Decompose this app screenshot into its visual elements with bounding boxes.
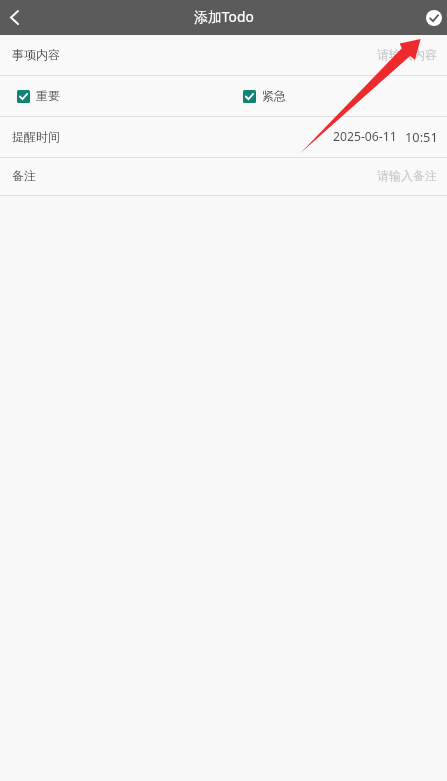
button[interactable]: 备注	[0, 158, 447, 195]
button[interactable]: Back	[0, 0, 28, 35]
staticText: 10:51	[405, 128, 438, 145]
staticText: 重要	[36, 88, 60, 103]
button[interactable]: 紧急	[243, 89, 286, 104]
staticText: 提醒时间	[12, 129, 60, 144]
button[interactable]: Confirm	[421, 0, 447, 35]
staticText: 添加Todo	[194, 7, 254, 26]
button[interactable]: 重要	[17, 89, 60, 104]
staticText: 请输入备注	[377, 168, 437, 183]
staticText: 紧急	[262, 88, 286, 103]
button[interactable]: 提醒时间	[0, 117, 447, 157]
staticText: 事项内容	[12, 47, 60, 62]
staticText: 2025-06-11	[333, 128, 397, 145]
staticText: 请输入内容	[377, 47, 437, 62]
button[interactable]: 事项内容	[0, 35, 447, 75]
staticText: 备注	[12, 168, 36, 183]
